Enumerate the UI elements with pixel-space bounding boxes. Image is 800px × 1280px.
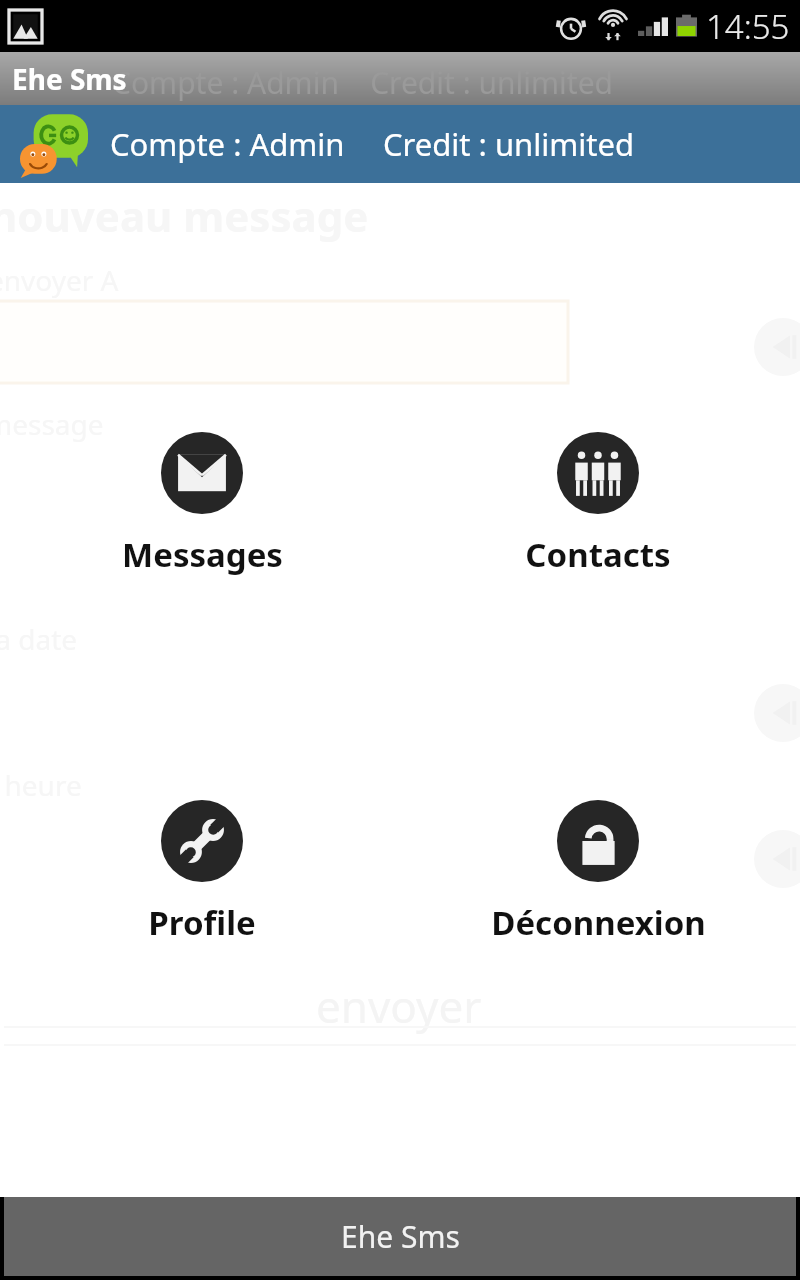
staticText: Compte : Admin Credit : unlimited [112, 62, 614, 103]
staticText: Ehe Sms [341, 1216, 460, 1257]
staticText: Compte : Admin [110, 123, 345, 165]
staticText: Credit : unlimited [383, 123, 634, 165]
staticText: Contacts [525, 532, 671, 577]
staticText: nouveau message [0, 187, 369, 244]
staticText: la date [0, 620, 78, 658]
staticText: 14:55 [706, 4, 790, 49]
staticText: Profile [148, 900, 256, 945]
staticText: Ehe Sms [12, 60, 127, 98]
button[interactable]: Contacts [400, 428, 796, 581]
staticText: envoyer [316, 976, 482, 1036]
button[interactable]: Profile [4, 796, 400, 949]
staticText: Messages [122, 532, 283, 577]
button[interactable]: Déconnexion [400, 796, 796, 949]
staticText: message [0, 405, 104, 443]
staticText: l heure [0, 766, 82, 804]
staticText: Déconnexion [491, 900, 706, 945]
staticText: envoyer A [0, 261, 119, 299]
button[interactable]: Messages [4, 428, 400, 581]
